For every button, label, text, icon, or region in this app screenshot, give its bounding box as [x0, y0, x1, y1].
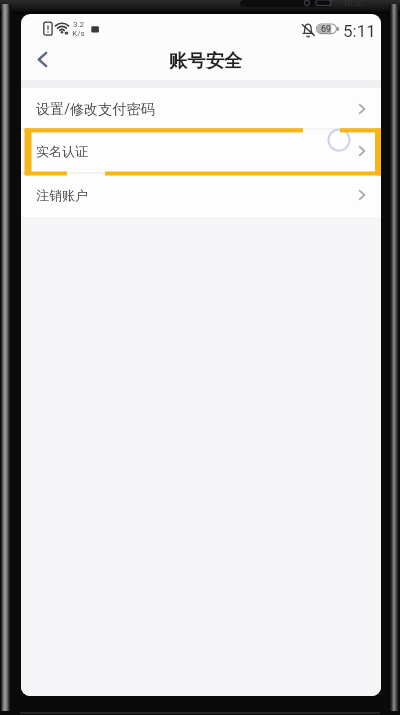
- staticText: 账号安全: [169, 49, 243, 72]
- staticText: 69: [321, 24, 332, 35]
- staticText: 设置/修改支付密码: [36, 100, 155, 118]
- staticText: 3.2 K/s: [72, 20, 85, 38]
- staticText: 5:11: [343, 21, 376, 41]
- button[interactable]: 注销账户: [21, 173, 381, 217]
- staticText: 注销账户: [36, 187, 88, 203]
- button[interactable]: 实名认证: [21, 129, 381, 173]
- button[interactable]: [25, 45, 61, 73]
- staticText: 10:20: [343, 0, 363, 8]
- staticText: 实名认证: [36, 143, 88, 159]
- button[interactable]: 设置/修改支付密码: [21, 88, 381, 129]
